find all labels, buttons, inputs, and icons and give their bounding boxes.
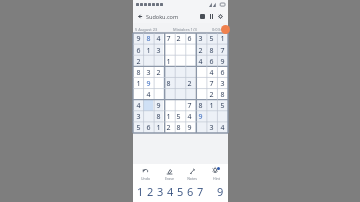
button[interactable] [143,111,153,122]
button[interactable]: 3 [195,33,206,45]
button[interactable]: 2 [195,45,206,56]
button[interactable] [173,100,184,111]
button[interactable]: 3 [133,111,143,122]
button[interactable] [173,45,184,56]
button[interactable]: 2 [206,89,217,100]
button[interactable]: 6 [185,184,195,198]
button[interactable]: 8 [173,122,184,133]
button[interactable] [217,111,228,122]
button[interactable]: 1 [153,122,163,133]
button[interactable]: 8 [206,45,217,56]
button[interactable]: Action button [221,25,230,34]
button[interactable] [195,89,206,100]
button[interactable] [184,89,195,100]
button[interactable] [195,78,206,89]
button[interactable]: 3 [153,45,163,56]
button[interactable]: 1 [133,78,143,89]
button[interactable]: 8 [163,78,173,89]
button[interactable]: 4 [184,111,195,122]
button[interactable]: 2 [163,122,173,133]
button[interactable]: 4 [195,56,206,67]
button[interactable] [163,45,173,56]
button[interactable]: 4 [143,89,153,100]
button[interactable] [173,89,184,100]
button[interactable]: Sudoku.com [146,13,198,20]
button[interactable]: 5 [206,33,217,45]
button[interactable]: 9 [153,100,163,111]
button[interactable]: 1 [163,111,173,122]
button[interactable]: 7 [163,33,173,45]
button[interactable]: 7 [217,45,228,56]
button[interactable]: 4 [153,33,163,45]
button[interactable]: 7 [195,184,205,198]
button[interactable] [163,67,173,78]
button[interactable]: 9 [215,184,225,198]
button[interactable] [163,89,173,100]
button[interactable] [153,78,163,89]
button[interactable] [173,56,184,67]
button[interactable]: 3 [217,78,228,89]
button[interactable]: 6 [217,67,228,78]
button[interactable]: 2 [133,56,143,67]
button[interactable]: 2 [184,78,195,89]
button[interactable] [163,100,173,111]
button[interactable]: Hint [205,167,227,181]
button[interactable]: 2 [173,33,184,45]
button[interactable] [143,100,153,111]
button[interactable]: 1 [217,33,228,45]
button[interactable]: Erase [158,167,180,181]
button[interactable] [184,45,195,56]
button[interactable]: 4 [217,122,228,133]
button[interactable]: Notes [181,167,203,181]
button[interactable]: 7 [184,100,195,111]
button[interactable]: 5 [217,100,228,111]
button[interactable]: 1 [163,56,173,67]
button[interactable]: 1 [206,100,217,111]
button[interactable] [133,89,143,100]
button[interactable]: 5 [173,111,184,122]
button[interactable]: 8 [153,111,163,122]
button[interactable]: 1 [136,184,145,198]
button[interactable]: 5 [133,122,143,133]
button[interactable]: 1 [143,45,153,56]
button[interactable]: 5 [175,184,185,198]
button[interactable]: 9 [133,33,143,45]
button[interactable]: 4 [165,184,175,198]
button[interactable]: 8 [143,33,153,45]
button[interactable]: 4 [133,100,143,111]
button[interactable] [153,56,163,67]
button[interactable]: 8 [133,67,143,78]
button[interactable] [173,67,184,78]
button[interactable] [195,122,206,133]
button[interactable]: 9 [143,78,153,89]
button[interactable]: 3 [206,122,217,133]
button[interactable]: 3 [155,184,165,198]
button[interactable]: 9 [217,56,228,67]
button[interactable] [184,67,195,78]
button[interactable]: Undo [134,167,156,181]
button[interactable] [143,56,153,67]
button[interactable] [206,111,217,122]
button[interactable]: 6 [133,45,143,56]
button[interactable] [195,67,206,78]
button[interactable]: 2 [145,184,155,198]
button[interactable]: Back [136,12,145,21]
button[interactable]: 9 [184,122,195,133]
button[interactable]: 2 [153,67,163,78]
button[interactable]: 8 [217,89,228,100]
button[interactable]: 6 [184,33,195,45]
button[interactable]: 3 [143,67,153,78]
button[interactable] [173,78,184,89]
button[interactable]: 6 [143,122,153,133]
button[interactable]: 7 [206,78,217,89]
button[interactable]: 6 [206,56,217,67]
button[interactable]: Settings [216,12,225,21]
button[interactable] [184,56,195,67]
button[interactable]: More options [207,12,216,21]
button[interactable]: 9 [195,111,206,122]
button[interactable]: 8 [195,100,206,111]
button[interactable] [153,89,163,100]
button[interactable]: Tabs [198,12,207,21]
button[interactable]: 4 [206,67,217,78]
